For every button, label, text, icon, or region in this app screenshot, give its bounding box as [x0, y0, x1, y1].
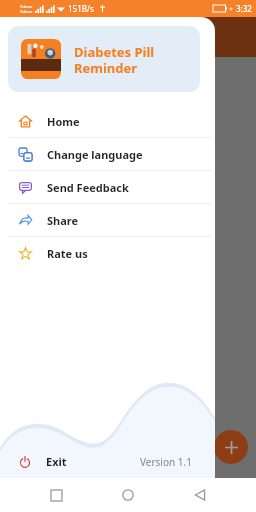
button[interactable]: Home: [0, 105, 215, 137]
button[interactable]: Send Feedback: [0, 171, 215, 203]
staticText: Diabetes Pill Reminder: [74, 43, 155, 76]
staticText: 3:32: [236, 3, 252, 14]
button[interactable]: Rate us: [0, 237, 215, 269]
staticText: Change language: [47, 147, 143, 162]
staticText: Version 1.1: [140, 455, 192, 469]
button[interactable]: Share: [0, 204, 215, 236]
button[interactable]: Change language: [0, 138, 215, 170]
button[interactable]: Home: [112, 479, 144, 511]
staticText: Telenor Telenor: [20, 4, 33, 14]
staticText: Share: [47, 213, 79, 228]
staticText: Home: [47, 114, 80, 129]
button[interactable]: Back: [184, 479, 216, 511]
button[interactable]: Exit: [0, 445, 140, 478]
staticText: Exit: [46, 454, 67, 469]
button[interactable]: Add reminder: [214, 430, 248, 464]
staticText: Send Feedback: [47, 180, 129, 195]
button[interactable]: Recent apps: [40, 479, 72, 511]
button[interactable]: Diabetes Pill Reminder: [8, 26, 200, 92]
staticText: Rate us: [47, 246, 88, 261]
staticText: 151B/s: [68, 3, 94, 14]
